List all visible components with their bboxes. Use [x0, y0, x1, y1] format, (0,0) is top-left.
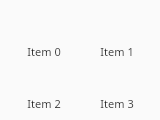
button[interactable]: Item 0	[7, 17, 80, 86]
staticText: Item 1	[100, 44, 134, 59]
button[interactable]: Item 3	[80, 86, 153, 120]
button[interactable]: Item 1	[80, 17, 153, 86]
staticText: Item 0	[27, 44, 61, 59]
staticText: Item 3	[100, 96, 134, 111]
staticText: Item 2	[27, 96, 61, 111]
button[interactable]: Item 2	[7, 86, 80, 120]
